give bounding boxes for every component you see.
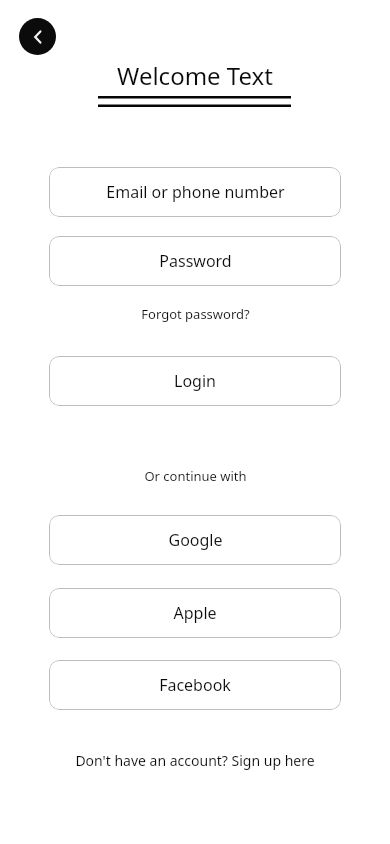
staticText: Login bbox=[174, 370, 216, 392]
staticText: Forgot password? bbox=[141, 305, 250, 323]
button[interactable]: Login bbox=[49, 356, 341, 406]
staticText: Password bbox=[159, 250, 232, 272]
staticText: Welcome Text bbox=[117, 59, 273, 91]
staticText: Facebook bbox=[159, 674, 231, 696]
button[interactable]: Facebook bbox=[49, 660, 341, 710]
staticText: Apple bbox=[173, 602, 217, 624]
staticText: Don't have an account? Sign up here bbox=[75, 751, 315, 770]
staticText: Or continue with bbox=[144, 467, 247, 485]
button[interactable]: Password bbox=[49, 236, 341, 286]
staticText: Email or phone number bbox=[106, 181, 285, 203]
button[interactable]: Google bbox=[49, 515, 341, 565]
staticText: Google bbox=[168, 529, 223, 551]
button[interactable]: Email or phone number bbox=[49, 167, 341, 217]
button[interactable]: Don't have an account? Sign up here bbox=[0, 749, 390, 771]
button[interactable]: Back bbox=[19, 18, 56, 55]
button[interactable]: Apple bbox=[49, 588, 341, 638]
button[interactable]: Forgot password? bbox=[0, 303, 390, 325]
